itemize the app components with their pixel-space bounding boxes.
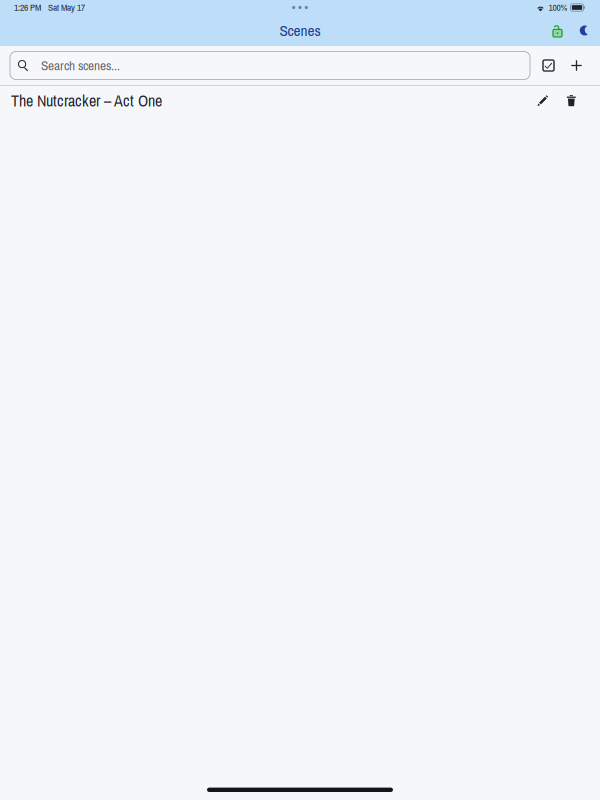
staticText: Scenes — [279, 20, 320, 41]
button[interactable]: Select scenes — [534, 51, 562, 80]
button[interactable]: Add scene — [562, 51, 590, 80]
button[interactable]: Appearance — [571, 15, 598, 46]
staticText: Search scenes... — [41, 56, 120, 74]
button[interactable]: The Nutcracker – Act One — [0, 86, 600, 116]
staticText: Sat May 17 — [48, 1, 85, 14]
staticText: 100% — [548, 1, 567, 14]
button[interactable]: Lock — [544, 15, 571, 46]
staticText: The Nutcracker – Act One — [11, 90, 162, 112]
staticText: 1:26 PM — [14, 1, 41, 14]
